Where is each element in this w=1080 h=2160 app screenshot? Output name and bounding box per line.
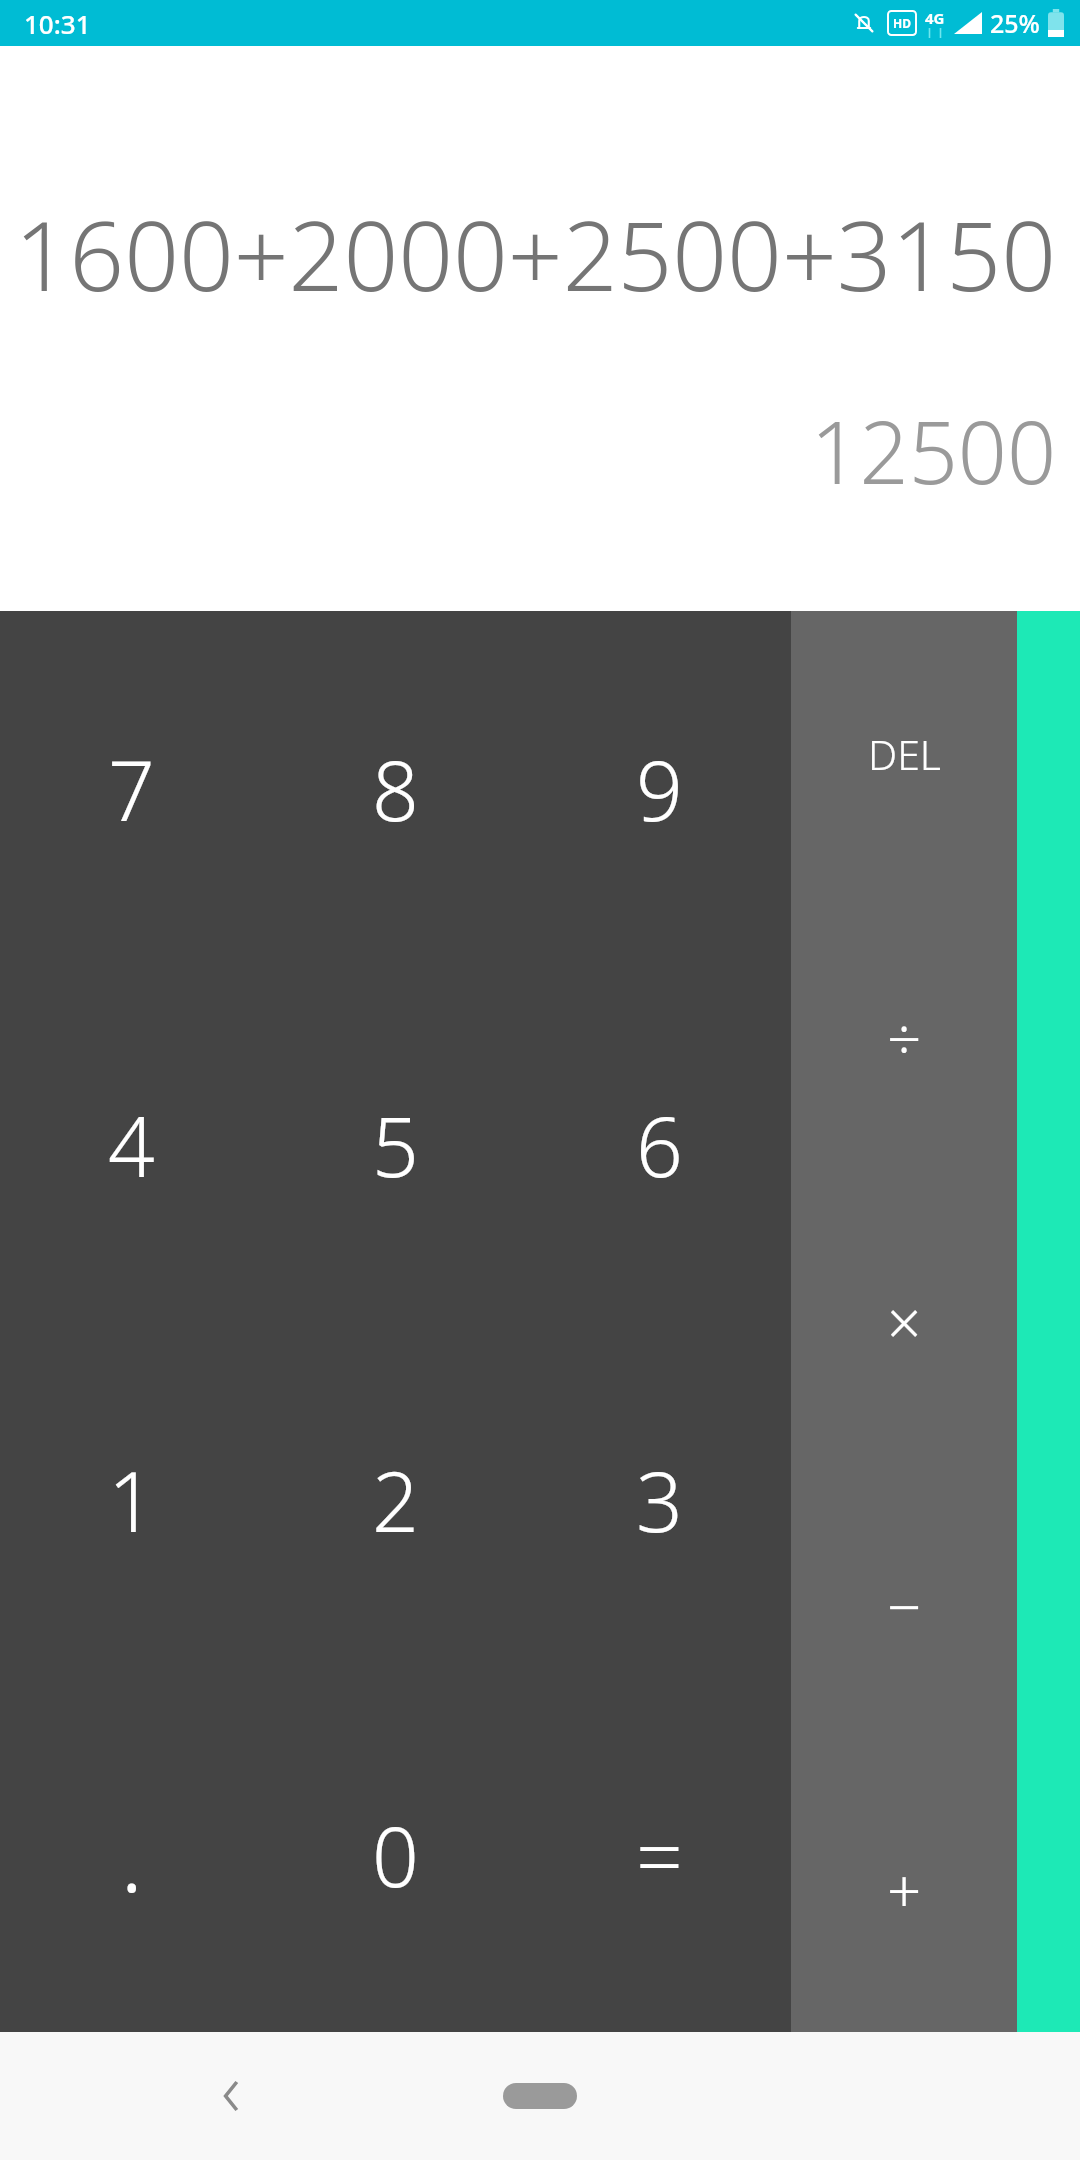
staticText: − [887,1565,922,1647]
button[interactable]: 8 [263,611,527,967]
staticText: ÷ [887,997,922,1079]
staticText: 5 [372,1089,419,1201]
staticText: DEL [868,726,941,782]
staticText: 3 [636,1444,683,1556]
staticText: 25% [990,6,1040,40]
button[interactable]: × [791,1180,1017,1464]
button[interactable]: Back [172,2036,292,2156]
button[interactable]: 4 [0,967,263,1322]
staticText: = [636,1799,683,1911]
button[interactable]: 2 [263,1322,527,1677]
staticText: HD [893,15,911,31]
button[interactable]: 6 [527,967,791,1322]
staticText: 1 [108,1444,155,1556]
staticText: 9 [636,733,683,845]
button[interactable]: 7 [0,611,263,967]
button[interactable]: ÷ [791,896,1017,1180]
button[interactable]: 5 [263,967,527,1322]
staticText: 7 [108,733,155,845]
button[interactable]: = [527,1677,791,2032]
staticText: + [887,1849,922,1931]
button[interactable]: . [0,1677,263,2032]
button[interactable]: 3 [527,1322,791,1677]
staticText: 12500 [0,392,1056,509]
staticText: . [120,1789,144,1920]
button[interactable]: Home [465,2056,615,2136]
button[interactable]: − [791,1464,1017,1748]
button[interactable]: 9 [527,611,791,967]
button[interactable]: DEL [791,611,1017,896]
staticText: 4 [108,1089,155,1201]
staticText: × [887,1281,922,1363]
button[interactable]: + [791,1748,1017,2032]
staticText: 0 [372,1799,419,1911]
button[interactable]: 1 [0,1322,263,1677]
staticText: 8 [372,733,419,845]
staticText: 6 [636,1089,683,1201]
staticText: 10:31 [24,6,91,41]
staticText: 2 [372,1444,419,1556]
staticText: 4G [925,8,945,28]
button[interactable]: 0 [263,1677,527,2032]
staticText: 1600+2000+2500+3150 [6,188,1056,319]
